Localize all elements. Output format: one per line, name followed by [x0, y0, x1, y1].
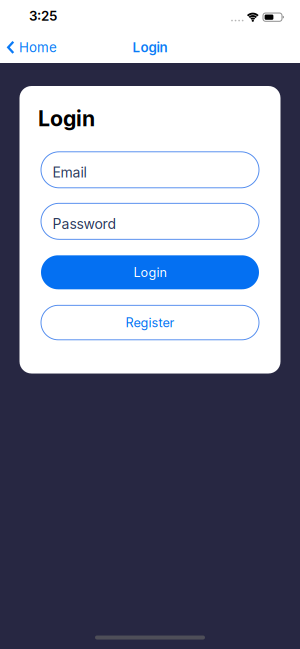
staticText: Register	[125, 315, 174, 330]
staticText: 3:25	[29, 8, 57, 24]
staticText: Login	[133, 265, 166, 280]
button[interactable]: Password	[41, 203, 259, 239]
button[interactable]: Back	[0, 39, 57, 55]
button[interactable]: Register	[41, 305, 259, 340]
staticText: Email	[52, 164, 86, 181]
staticText: Home	[19, 39, 57, 55]
staticText: Login	[132, 39, 167, 55]
button[interactable]: Login	[41, 255, 259, 289]
staticText: Password	[52, 215, 116, 232]
staticText: Login	[38, 105, 95, 131]
button[interactable]: Email	[41, 152, 259, 188]
